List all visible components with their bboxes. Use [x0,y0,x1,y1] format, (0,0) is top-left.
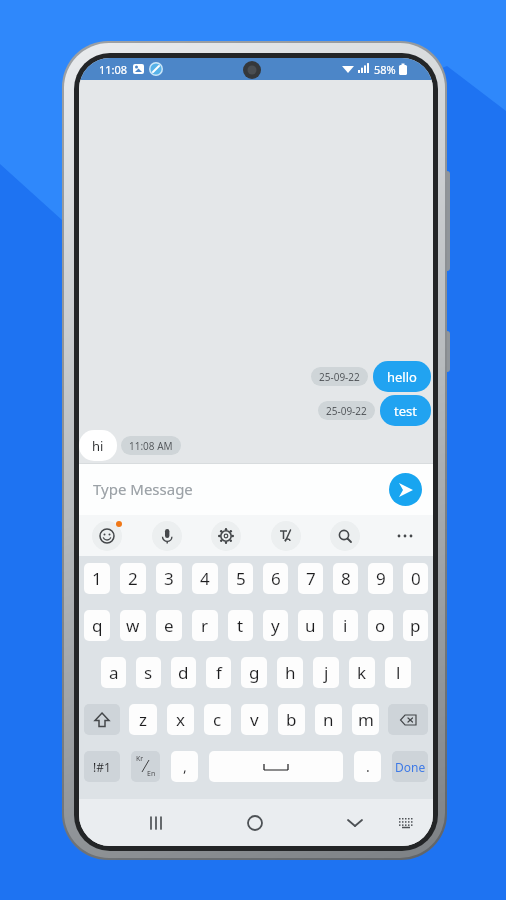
button[interactable]: Kr [131,751,160,782]
button[interactable] [389,473,422,506]
button[interactable]: test [380,395,431,426]
button[interactable] [84,704,120,735]
staticText: 4 [200,567,210,590]
button[interactable] [271,521,301,551]
button[interactable]: , [171,751,198,782]
button[interactable]: hello [373,361,431,392]
button[interactable]: d [171,657,196,688]
button[interactable]: e [156,610,182,641]
staticText: 11:08 [99,62,128,77]
staticText: 2 [128,567,138,590]
staticText: 7 [306,567,316,590]
button[interactable]: t [228,610,253,641]
staticText: 0 [411,567,421,590]
button[interactable]: c [204,704,231,735]
button[interactable] [390,521,420,551]
button[interactable]: 4 [192,563,218,594]
staticText: 1 [92,567,102,590]
button[interactable] [330,521,360,551]
staticText: t [237,614,244,637]
staticText: En [147,769,156,779]
staticText: 58% [374,62,396,77]
staticText: p [410,614,421,637]
staticText: 11:08 AM [129,439,173,453]
button[interactable]: a [101,657,126,688]
staticText: , [183,757,187,776]
staticText: Done [395,759,426,775]
button[interactable]: 6 [263,563,288,594]
button[interactable] [211,521,241,551]
staticText: 25-09-22 [326,404,367,418]
button[interactable]: h [277,657,303,688]
staticText: l [396,661,401,684]
staticText: 3 [164,567,174,590]
staticText: d [178,661,189,684]
staticText: e [164,614,174,637]
button[interactable] [389,806,423,840]
staticText: s [144,661,153,684]
staticText: 9 [376,567,386,590]
button[interactable]: 7 [298,563,323,594]
staticText: m [358,708,374,731]
button[interactable]: b [278,704,305,735]
staticText: j [324,661,329,684]
staticText: 5 [236,567,246,590]
button[interactable]: !#1 [84,751,120,782]
button[interactable]: 9 [368,563,393,594]
staticText: hi [92,437,104,455]
button[interactable] [152,521,182,551]
button[interactable]: m [352,704,379,735]
staticText: b [286,708,297,731]
staticText: g [249,661,260,684]
staticText: . [366,757,370,776]
staticText: z [139,708,147,731]
button[interactable]: w [120,610,146,641]
button[interactable]: u [298,610,323,641]
staticText: x [176,708,185,731]
staticText: Type Message [93,479,389,499]
button[interactable]: 1 [84,563,110,594]
button[interactable]: q [84,610,110,641]
button[interactable]: hi [79,430,117,461]
button[interactable]: k [349,657,375,688]
staticText: hello [387,368,417,386]
button[interactable]: r [192,610,218,641]
button[interactable] [235,803,275,843]
button[interactable]: i [333,610,358,641]
button[interactable]: y [263,610,288,641]
button[interactable]: 0 [403,563,428,594]
button[interactable]: Done [392,751,428,782]
staticText: Kr [136,754,144,764]
button[interactable]: . [354,751,381,782]
button[interactable]: o [368,610,393,641]
button[interactable]: 2 [120,563,146,594]
staticText: 6 [271,567,281,590]
staticText: o [375,614,386,637]
button[interactable]: 5 [228,563,253,594]
button[interactable] [335,803,375,843]
button[interactable]: l [385,657,411,688]
staticText: test [394,402,417,420]
staticText: !#1 [93,759,111,775]
staticText: q [92,614,103,637]
button[interactable]: 8 [333,563,358,594]
button[interactable]: z [129,704,157,735]
staticText: 25-09-22 [319,370,360,384]
button[interactable]: 3 [156,563,182,594]
button[interactable] [388,704,428,735]
button[interactable]: n [315,704,342,735]
button[interactable] [209,751,343,782]
staticText: c [213,708,222,731]
staticText: k [357,661,367,684]
button[interactable] [92,521,122,551]
button[interactable]: s [136,657,161,688]
button[interactable]: p [403,610,428,641]
button[interactable] [136,803,176,843]
staticText: y [271,614,280,637]
button[interactable]: j [313,657,339,688]
button[interactable]: f [206,657,231,688]
button[interactable]: x [167,704,194,735]
staticText: h [285,661,296,684]
button[interactable]: v [241,704,268,735]
button[interactable]: g [241,657,267,688]
